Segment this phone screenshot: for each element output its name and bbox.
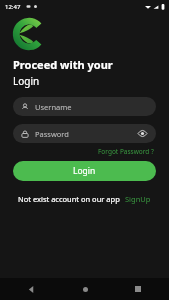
staticText: 12:47 [5, 3, 21, 11]
staticText: SignUp [125, 194, 151, 204]
staticText: Forgot Password ? [98, 147, 154, 156]
button[interactable]: Login [13, 161, 156, 181]
button[interactable]: Show password [137, 128, 148, 139]
staticText: Username [35, 102, 72, 112]
staticText: Login [13, 74, 40, 88]
button[interactable]: Home [76, 280, 94, 298]
staticText: Password [35, 129, 69, 139]
button[interactable]: Recents [129, 280, 147, 298]
button[interactable]: Username [13, 97, 156, 116]
button[interactable]: Back [22, 280, 40, 298]
staticText: Login [73, 165, 96, 177]
button[interactable]: Password [13, 124, 156, 143]
staticText: Proceed with your [13, 57, 113, 72]
button[interactable]: Forgot Password ? [96, 145, 156, 158]
button[interactable]: SignUp [124, 193, 152, 205]
staticText: Not exist account on our app [18, 194, 120, 204]
